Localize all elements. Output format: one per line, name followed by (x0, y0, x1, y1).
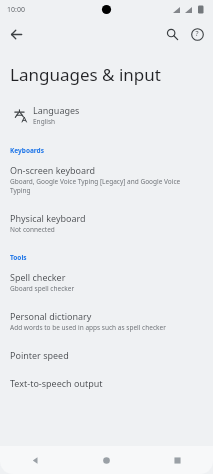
staticText: Languages (33, 104, 80, 116)
staticText: Physical keyboard (10, 212, 86, 224)
staticText: On-screen keyboard (10, 164, 96, 176)
staticText: Languages & input (10, 63, 161, 86)
button[interactable]: Languages (0, 101, 213, 129)
staticText: 10:00 (7, 5, 25, 15)
staticText: Keyboards (10, 146, 44, 155)
staticText: Add words to be used in apps such as spe… (10, 323, 166, 332)
button[interactable]: Recent apps (142, 446, 213, 474)
staticText: Gboard, Google Voice Typing [Legacy] and… (10, 177, 199, 195)
staticText: Not connected (10, 225, 55, 234)
button[interactable]: Help (186, 23, 208, 45)
button[interactable]: Back (5, 23, 27, 45)
staticText: Spell checker (10, 271, 66, 283)
button[interactable]: Home (71, 446, 142, 474)
staticText: Gboard spell checker (10, 284, 75, 293)
staticText: Personal dictionary (10, 310, 92, 322)
staticText: Pointer speed (10, 349, 69, 361)
staticText: Text-to-speech output (10, 377, 103, 389)
staticText: ? (195, 29, 199, 39)
button[interactable]: Pointer speed (0, 347, 213, 363)
staticText: Tools (10, 253, 27, 262)
button[interactable]: On-screen keyboard (0, 162, 213, 197)
button[interactable]: Personal dictionary (0, 308, 213, 334)
button[interactable]: Search (161, 23, 183, 45)
staticText: English (33, 117, 56, 126)
button[interactable]: Spell checker (0, 269, 213, 295)
button[interactable]: Back (0, 446, 71, 474)
button[interactable]: Text-to-speech output (0, 375, 213, 391)
button[interactable]: Physical keyboard (0, 210, 213, 236)
